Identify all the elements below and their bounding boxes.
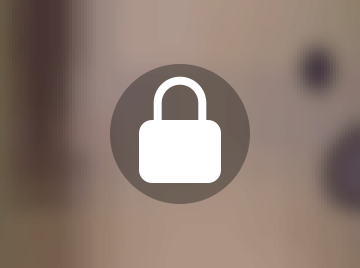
button[interactable]: Unlock photo <box>0 0 360 268</box>
